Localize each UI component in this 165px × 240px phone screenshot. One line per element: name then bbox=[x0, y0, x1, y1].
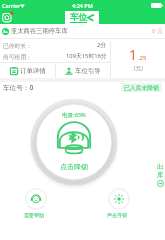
button[interactable]: 出 bbox=[156, 163, 165, 187]
button[interactable]: 点击降锁 bbox=[31, 99, 117, 185]
staticText: 1 bbox=[129, 45, 138, 64]
staticText: 出 bbox=[157, 163, 164, 171]
staticText: 需要帮助 bbox=[23, 212, 45, 218]
staticText: 尚可租用： bbox=[3, 53, 32, 60]
staticText: 109天15时16分 bbox=[66, 52, 107, 60]
staticText: A+ bbox=[3, 29, 9, 34]
staticText: (元) bbox=[134, 64, 143, 72]
staticText: 亚太商谷三期停车库 bbox=[11, 27, 68, 35]
button[interactable]: 需要帮助 bbox=[25, 188, 47, 218]
staticText: 电量:65% bbox=[62, 111, 86, 119]
button[interactable]: 订单详情 bbox=[0, 63, 55, 78]
button[interactable]: 车位引导 bbox=[56, 63, 110, 78]
staticText: 车位引导 bbox=[75, 67, 101, 75]
staticText: 订单详情 bbox=[20, 67, 46, 75]
staticText: 已入库未降锁 bbox=[124, 84, 159, 91]
staticText: 4:24 PM bbox=[72, 2, 93, 9]
button[interactable]: 声光寻锁 bbox=[108, 188, 130, 218]
staticText: 车位号：0 bbox=[3, 83, 34, 92]
staticText: 库 bbox=[157, 171, 164, 179]
staticText: 点击降锁 bbox=[60, 162, 88, 171]
staticText: 车位 bbox=[70, 12, 87, 23]
staticText: .25 bbox=[138, 54, 147, 62]
staticText: 0 bbox=[152, 27, 156, 35]
staticText: Carrier bbox=[2, 2, 21, 9]
staticText: 元 bbox=[157, 27, 163, 35]
staticText: 声光寻锁 bbox=[106, 212, 128, 218]
staticText: 2分 bbox=[97, 41, 107, 49]
staticText: 已停时长： bbox=[3, 42, 32, 49]
button[interactable]: 扫一扫 bbox=[2, 12, 13, 23]
